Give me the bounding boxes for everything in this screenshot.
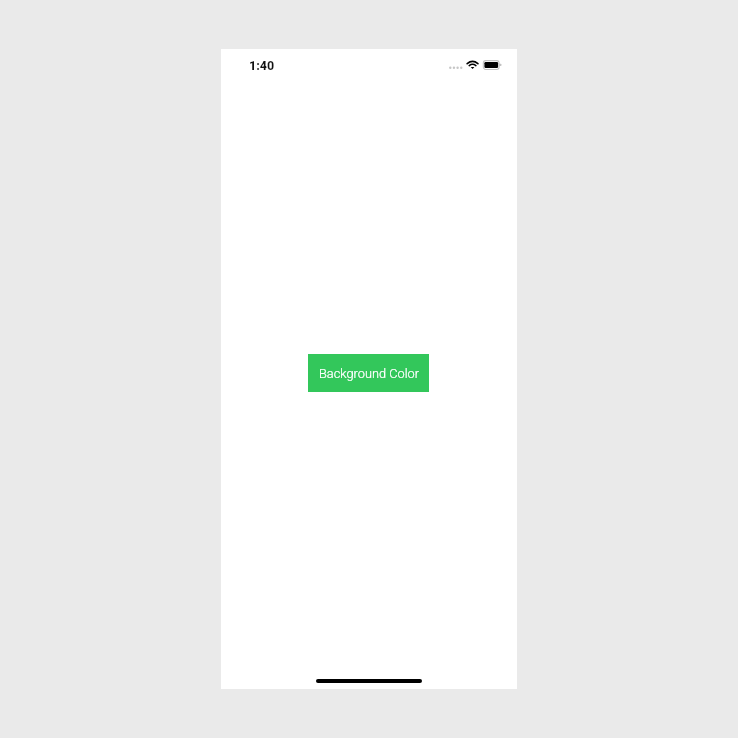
button[interactable]: Background Color bbox=[308, 354, 429, 392]
other: Signal, Wi-Fi and battery status bbox=[444, 55, 508, 75]
staticText: 1:40 bbox=[249, 58, 275, 73]
staticText: Background Color bbox=[319, 366, 419, 381]
